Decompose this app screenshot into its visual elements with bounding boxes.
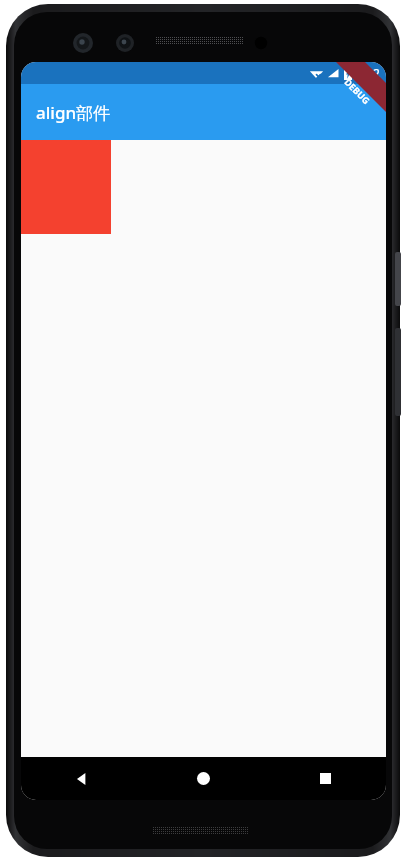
button[interactable]: Recent apps bbox=[264, 757, 386, 800]
staticText: 5:12 bbox=[356, 65, 380, 81]
button[interactable]: Back bbox=[21, 757, 142, 800]
staticText: DEBUG bbox=[342, 76, 373, 106]
button[interactable]: Home bbox=[142, 757, 264, 800]
staticText: align部件 bbox=[36, 101, 111, 124]
